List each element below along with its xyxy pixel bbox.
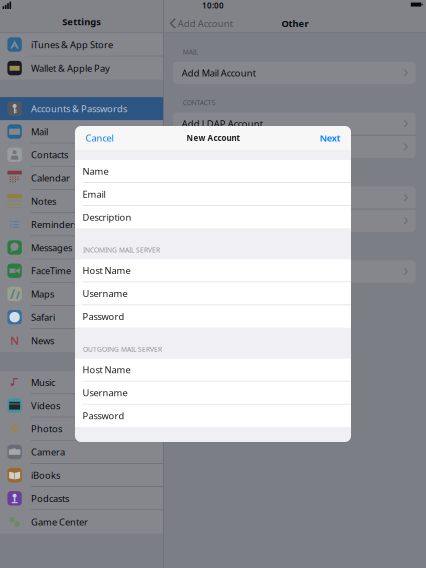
staticText: News bbox=[31, 334, 54, 347]
button[interactable]: Add Mail Account bbox=[173, 62, 416, 84]
button[interactable]: Add CalDAV Account bbox=[173, 186, 416, 209]
staticText: 10:00 bbox=[202, 0, 224, 11]
button[interactable]: Email bbox=[75, 183, 351, 205]
button[interactable]: iBooks bbox=[0, 464, 163, 487]
staticText: Accounts & Passwords bbox=[31, 102, 127, 115]
staticText: Username bbox=[83, 387, 128, 399]
button[interactable]: Add macOS Server Account bbox=[173, 260, 416, 283]
button[interactable]: Messages bbox=[0, 236, 163, 259]
staticText: Cancel bbox=[86, 132, 114, 144]
button[interactable]: Host Name bbox=[75, 259, 351, 282]
staticText: Username bbox=[83, 287, 128, 300]
staticText: Notes bbox=[31, 195, 56, 207]
staticText: New Account bbox=[186, 133, 239, 143]
staticText: Safari bbox=[31, 311, 55, 323]
button[interactable]: Name bbox=[75, 160, 351, 182]
button[interactable]: Mail bbox=[0, 120, 163, 143]
button[interactable]: FaceTime bbox=[0, 259, 163, 283]
button[interactable]: Cancel bbox=[75, 127, 114, 149]
staticText: Photos bbox=[31, 423, 62, 435]
button[interactable]: Add CardDAV Account bbox=[173, 136, 416, 158]
button[interactable]: iTunes & App Store bbox=[0, 33, 163, 56]
staticText: Add Account bbox=[178, 17, 233, 30]
staticText: Reminders bbox=[31, 218, 78, 231]
button[interactable]: Reminders bbox=[0, 213, 163, 236]
button[interactable]: Calendar bbox=[0, 167, 163, 190]
staticText: Add LDAP Account bbox=[182, 117, 263, 130]
staticText: Add Mail Account bbox=[182, 67, 256, 79]
staticText: Settings bbox=[62, 15, 101, 28]
staticText: Podcasts bbox=[31, 492, 69, 505]
staticText: iTunes & App Store bbox=[31, 38, 113, 51]
button[interactable]: Password bbox=[75, 305, 351, 328]
staticText: Music bbox=[31, 376, 55, 389]
staticText: Email bbox=[83, 188, 106, 200]
button[interactable]: News bbox=[0, 329, 163, 352]
staticText: Mail bbox=[31, 125, 48, 138]
staticText: Other bbox=[282, 17, 309, 30]
staticText: Maps bbox=[31, 288, 54, 300]
staticText: iBooks bbox=[31, 469, 60, 481]
button[interactable]: Music bbox=[0, 371, 163, 394]
staticText: Add CardDAV Account bbox=[182, 141, 279, 153]
button[interactable]: Username bbox=[75, 382, 351, 404]
staticText: Next bbox=[320, 132, 341, 144]
staticText: Contacts bbox=[31, 149, 68, 161]
button[interactable]: Notes bbox=[0, 190, 163, 213]
button[interactable]: Videos bbox=[0, 394, 163, 417]
staticText: CONTACTS bbox=[183, 98, 216, 107]
button[interactable]: Podcasts bbox=[0, 487, 163, 510]
staticText: Game Center bbox=[31, 516, 88, 528]
staticText: Name bbox=[83, 165, 109, 177]
staticText: MAIL bbox=[183, 47, 198, 56]
staticText: Password bbox=[83, 310, 125, 323]
staticText: Description bbox=[83, 211, 132, 223]
staticText: Wallet & Apple Pay bbox=[31, 62, 110, 74]
button[interactable]: Game Center bbox=[0, 510, 163, 533]
staticText: Host Name bbox=[83, 364, 131, 376]
button[interactable]: Add LDAP Account bbox=[173, 112, 416, 135]
staticText: Host Name bbox=[83, 264, 131, 277]
staticText: Camera bbox=[31, 446, 65, 458]
staticText: Messages bbox=[31, 241, 72, 254]
button[interactable]: Description bbox=[75, 206, 351, 228]
button[interactable]: Add Subscribed Calendar bbox=[173, 209, 416, 232]
staticText: FaceTime bbox=[31, 265, 71, 277]
button[interactable]: Camera bbox=[0, 441, 163, 464]
staticText: Calendar bbox=[31, 172, 70, 184]
button[interactable]: Accounts & Passwords bbox=[0, 97, 163, 120]
staticText: Password bbox=[83, 410, 125, 422]
staticText: Videos bbox=[31, 399, 60, 412]
button[interactable]: Password bbox=[75, 405, 351, 427]
button[interactable]: Wallet & Apple Pay bbox=[0, 56, 163, 80]
staticText: INCOMING MAIL SERVER bbox=[83, 245, 160, 254]
button[interactable]: Next bbox=[320, 127, 351, 149]
button[interactable]: Host Name bbox=[75, 359, 351, 381]
button[interactable]: Maps bbox=[0, 283, 163, 306]
button[interactable]: Photos bbox=[0, 417, 163, 441]
button[interactable]: Contacts bbox=[0, 143, 163, 167]
button[interactable]: Safari bbox=[0, 306, 163, 329]
staticText: OUTGOING MAIL SERVER bbox=[83, 345, 162, 354]
button[interactable]: Username bbox=[75, 282, 351, 305]
button[interactable]: Add Account bbox=[164, 14, 233, 33]
